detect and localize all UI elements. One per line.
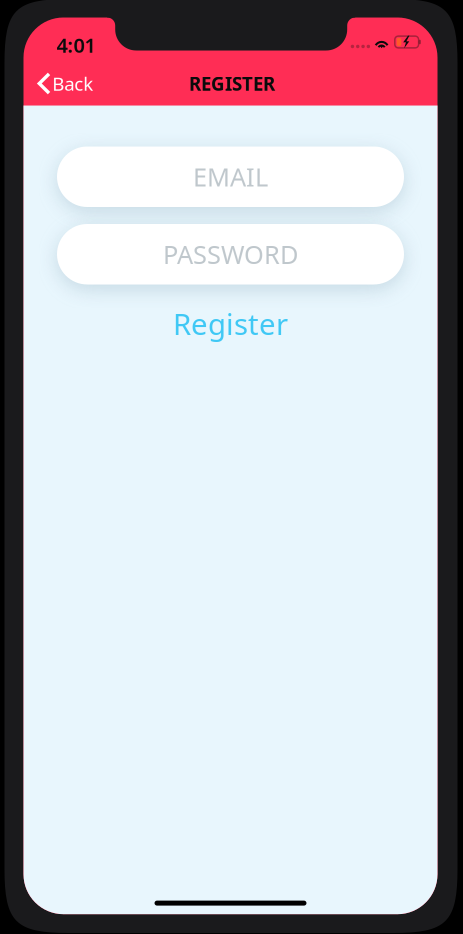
- staticText: Back: [52, 71, 93, 96]
- button[interactable]: Back: [23, 61, 103, 105]
- staticText: Register: [173, 304, 288, 343]
- staticText: PASSWORD: [163, 237, 298, 271]
- staticText: EMAIL: [193, 160, 268, 193]
- staticText: REGISTER: [189, 71, 275, 96]
- staticText: 4:01: [56, 32, 95, 58]
- button[interactable]: Register: [173, 284, 288, 340]
- button[interactable]: EMAIL: [57, 146, 404, 207]
- button[interactable]: PASSWORD: [57, 224, 404, 284]
